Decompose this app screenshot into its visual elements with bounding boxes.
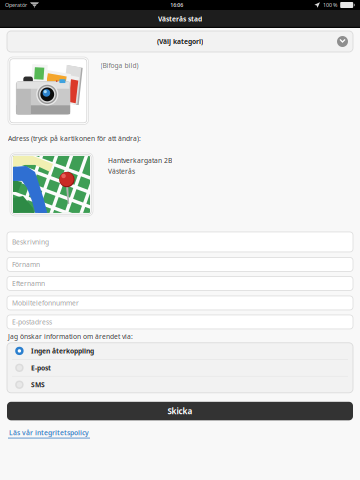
staticText: 16:06: [170, 1, 183, 9]
staticText: Västerås: [108, 167, 135, 176]
staticText: Läs vår integritetspolicy: [9, 428, 89, 437]
button[interactable]: Efternamn: [7, 276, 353, 290]
staticText: Västerås stad: [158, 15, 202, 23]
staticText: Mobiltelefonnummer: [12, 298, 79, 307]
staticText: E-postadress: [12, 317, 52, 326]
staticText: (Välj kategori): [157, 37, 203, 46]
staticText: 100 %: [323, 1, 337, 9]
button[interactable]: Förnamn: [7, 257, 353, 271]
staticText: Jag önskar information om ärendet via:: [8, 332, 133, 341]
staticText: Ingen återkoppling: [31, 346, 94, 355]
button[interactable]: Beskrivning: [7, 232, 353, 252]
button[interactable]: Bifoga bild: [8, 57, 89, 125]
staticText: (Bifoga bild): [101, 61, 139, 70]
staticText: Adress (tryck på kartikonen för att ändr…: [8, 134, 141, 143]
button[interactable]: E-post: [7, 360, 353, 376]
button[interactable]: SMS: [7, 377, 353, 393]
staticText: Beskrivning: [12, 237, 49, 246]
button[interactable]: Läs vår integritetspolicy: [8, 428, 90, 438]
staticText: Efternamn: [12, 279, 45, 288]
button[interactable]: Ändra adress på kartan: [10, 153, 93, 216]
staticText: Förnamn: [12, 260, 40, 269]
staticText: Skicka: [167, 406, 192, 416]
button[interactable]: E-postadress: [7, 315, 353, 329]
staticText: Operatör: [5, 1, 27, 9]
staticText: Hantverkargatan 2B: [108, 156, 172, 165]
button[interactable]: (Välj kategori): [7, 31, 353, 52]
staticText: SMS: [31, 380, 45, 389]
button[interactable]: Ingen återkoppling: [7, 343, 353, 359]
button[interactable]: Mobiltelefonnummer: [7, 296, 353, 310]
staticText: E-post: [31, 363, 51, 372]
button[interactable]: Skicka: [7, 402, 353, 420]
